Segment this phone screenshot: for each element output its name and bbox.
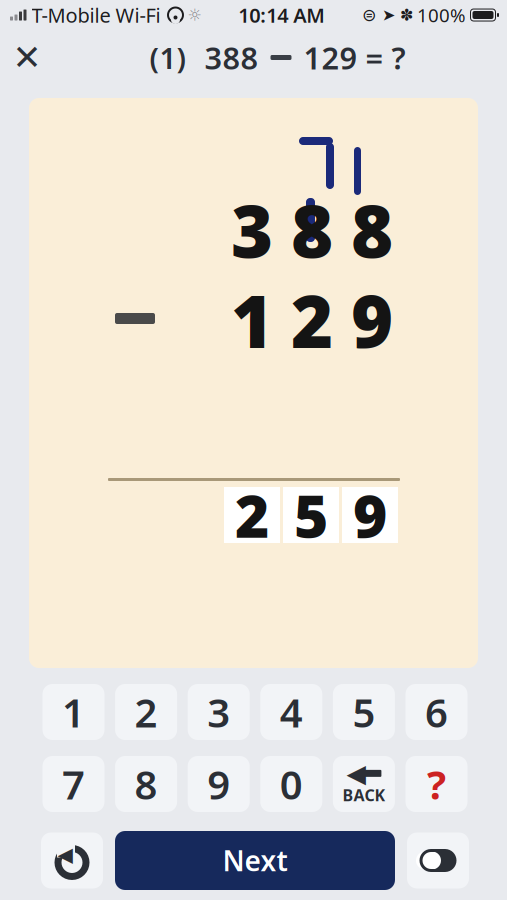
- staticText: 7: [62, 757, 85, 810]
- button[interactable]: 1: [42, 684, 104, 740]
- staticText: Next: [222, 842, 287, 879]
- staticText: ◀: [57, 843, 72, 866]
- button[interactable]: Back: [333, 756, 395, 812]
- staticText: 8: [135, 757, 158, 810]
- staticText: ⊜: [362, 5, 377, 25]
- staticText: 8: [351, 182, 393, 278]
- button[interactable]: 4: [260, 684, 322, 740]
- staticText: 100%: [417, 3, 466, 27]
- staticText: ✕: [12, 38, 41, 77]
- button[interactable]: 0: [260, 756, 322, 812]
- staticText: ☼: [187, 6, 201, 24]
- staticText: 9: [207, 757, 230, 810]
- staticText: 129 = ?: [303, 37, 405, 78]
- staticText: ?: [427, 757, 446, 810]
- staticText: 2: [291, 272, 333, 368]
- staticText: 1: [231, 272, 273, 368]
- staticText: 1: [62, 685, 85, 738]
- button[interactable]: 6: [405, 684, 467, 740]
- button[interactable]: Next: [115, 831, 395, 890]
- staticText: ◀: [346, 759, 365, 788]
- staticText: 6: [425, 685, 448, 738]
- staticText: (1): [149, 38, 186, 77]
- staticText: 10:14 AM: [238, 2, 325, 28]
- staticText: 2: [235, 476, 269, 554]
- staticText: 4: [280, 685, 303, 738]
- button[interactable]: Close: [0, 30, 54, 84]
- button[interactable]: Undo: [41, 832, 103, 888]
- staticText: 3: [231, 182, 273, 278]
- button[interactable]: 8: [115, 756, 177, 812]
- button[interactable]: 7: [42, 756, 104, 812]
- staticText: 8: [291, 182, 333, 278]
- staticText: 2: [135, 685, 158, 738]
- staticText: 9: [351, 272, 393, 368]
- staticText: 9: [353, 476, 387, 554]
- button[interactable]: 9: [188, 756, 250, 812]
- button[interactable]: 3: [188, 684, 250, 740]
- staticText: BACK: [342, 784, 385, 806]
- button[interactable]: 2: [115, 684, 177, 740]
- button[interactable]: Eraser: [407, 832, 469, 888]
- staticText: 3: [207, 685, 230, 738]
- staticText: ➤: [382, 6, 395, 24]
- staticText: 388: [204, 37, 258, 78]
- staticText: 5: [294, 476, 328, 554]
- button[interactable]: 5: [333, 684, 395, 740]
- button[interactable]: Hint: [405, 756, 467, 812]
- staticText: 5: [352, 685, 375, 738]
- staticText: T-Mobile Wi-Fi: [31, 2, 160, 28]
- staticText: ✽: [400, 6, 413, 24]
- staticText: 0: [280, 757, 303, 810]
